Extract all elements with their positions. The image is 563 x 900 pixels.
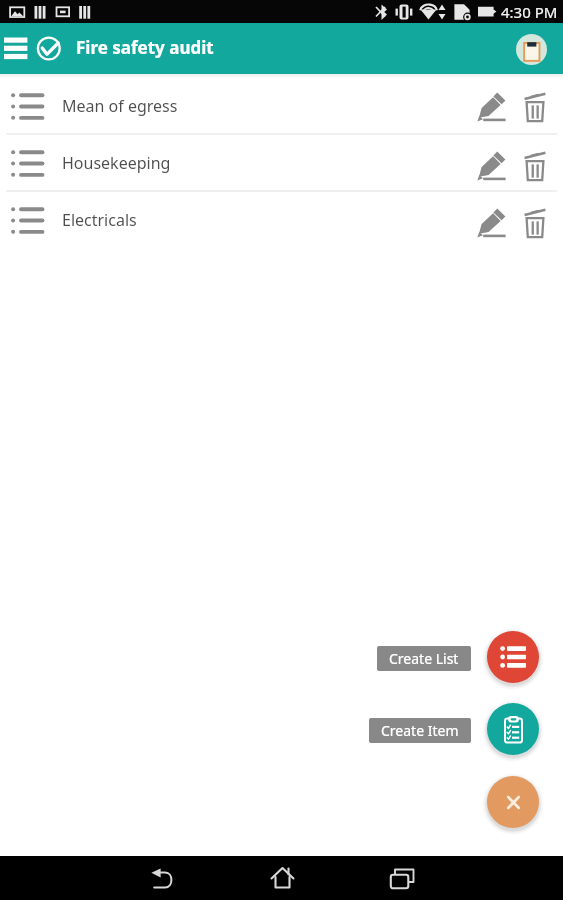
button[interactable]: Create Item bbox=[369, 718, 471, 743]
staticText: 4:30 PM bbox=[501, 2, 558, 22]
button[interactable]: Menu bbox=[0, 23, 34, 74]
staticText: Create List bbox=[389, 649, 459, 668]
button[interactable]: Recents bbox=[382, 858, 422, 898]
button[interactable]: Edit bbox=[468, 135, 512, 190]
button[interactable]: Checklist bbox=[514, 32, 548, 66]
button[interactable]: Create List bbox=[487, 631, 539, 683]
button[interactable]: Mean of egress bbox=[0, 74, 563, 133]
button[interactable]: Create Item bbox=[487, 703, 539, 755]
button[interactable]: Delete bbox=[512, 192, 556, 247]
button[interactable]: Edit bbox=[468, 192, 512, 247]
staticText: Create Item bbox=[381, 721, 459, 740]
staticText: Mean of egress bbox=[62, 95, 178, 117]
button[interactable]: Electricals bbox=[0, 192, 563, 247]
button[interactable]: Delete bbox=[512, 135, 556, 190]
button[interactable]: Close menu bbox=[487, 776, 539, 828]
staticText: Electricals bbox=[62, 209, 137, 231]
button[interactable]: Back bbox=[142, 858, 182, 898]
button[interactable]: Delete bbox=[512, 74, 556, 133]
button[interactable]: Create List bbox=[377, 646, 471, 671]
button[interactable]: Edit bbox=[468, 74, 512, 133]
button[interactable]: Home bbox=[262, 858, 302, 898]
staticText: Housekeeping bbox=[62, 152, 171, 174]
staticText: Fire safety audit bbox=[76, 36, 214, 59]
button[interactable]: Housekeeping bbox=[0, 135, 563, 190]
